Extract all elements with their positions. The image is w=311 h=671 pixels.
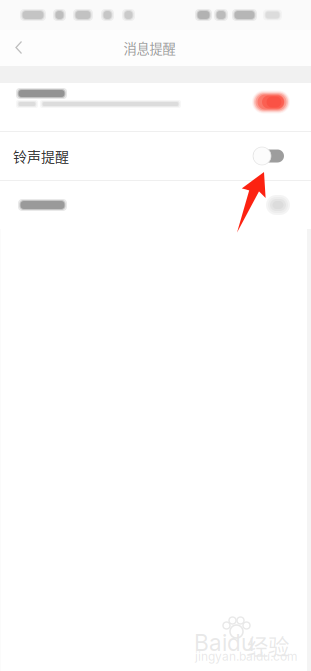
button[interactable]: Back bbox=[0, 30, 38, 66]
staticText: jingyan.baidu.com bbox=[195, 649, 298, 663]
staticText: 消息提醒 bbox=[123, 38, 175, 58]
staticText: Baidu bbox=[194, 629, 254, 656]
button[interactable] bbox=[0, 83, 311, 131]
button[interactable] bbox=[0, 181, 311, 229]
staticText: 铃声提醒 bbox=[13, 146, 69, 166]
staticText: 经验 bbox=[247, 630, 289, 661]
button[interactable]: 铃声提醒 bbox=[0, 132, 311, 180]
